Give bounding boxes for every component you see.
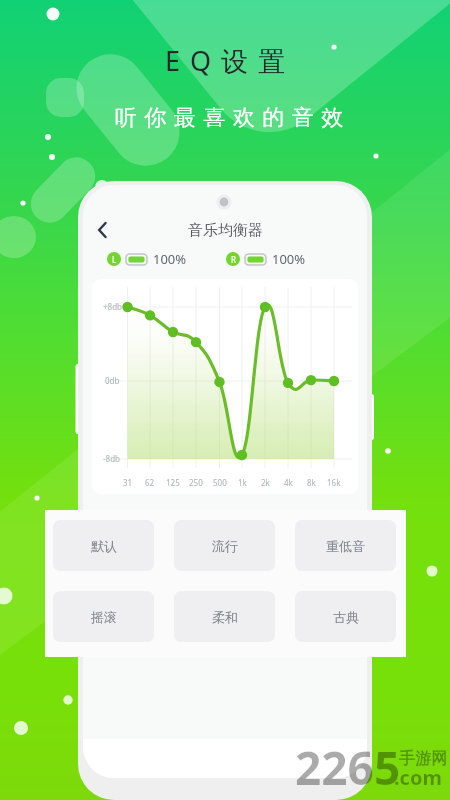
staticText: +8db — [103, 301, 122, 312]
button[interactable]: 摇滚 — [53, 591, 154, 642]
staticText: 2k — [261, 477, 270, 488]
staticText: 重低音 — [326, 538, 365, 554]
button[interactable]: 默认 — [53, 520, 154, 571]
staticText: 听你最喜欢的音效 — [111, 104, 347, 132]
staticText: 2265 — [295, 736, 401, 799]
staticText: 手游网 — [399, 749, 447, 769]
staticText: 4k — [284, 477, 293, 488]
staticText: 250 — [189, 477, 203, 488]
staticText: L — [112, 254, 117, 265]
staticText: 柔和 — [212, 609, 238, 625]
staticText: 古典 — [333, 609, 359, 625]
staticText: -8db — [103, 453, 120, 464]
staticText: 摇滚 — [91, 609, 117, 625]
button[interactable]: Back — [90, 217, 116, 243]
button[interactable]: 重低音 — [295, 520, 396, 571]
staticText: 31 — [123, 477, 133, 488]
staticText: 默认 — [91, 538, 117, 554]
staticText: R — [231, 254, 236, 265]
button[interactable]: 柔和 — [174, 591, 275, 642]
staticText: 音乐均衡器 — [188, 221, 263, 240]
staticText: 16k — [327, 477, 341, 488]
staticText: 500 — [213, 477, 227, 488]
staticText: 1k — [238, 477, 247, 488]
staticText: EQ设置 — [165, 42, 296, 79]
staticText: .com — [394, 764, 442, 791]
staticText: 62 — [145, 477, 155, 488]
staticText: 8k — [307, 477, 316, 488]
staticText: 100% — [272, 250, 306, 268]
button[interactable]: 古典 — [295, 591, 396, 642]
staticText: 125 — [166, 477, 180, 488]
staticText: 流行 — [212, 538, 238, 554]
staticText: 0db — [105, 375, 120, 386]
button[interactable]: 流行 — [174, 520, 275, 571]
staticText: 100% — [153, 250, 187, 268]
